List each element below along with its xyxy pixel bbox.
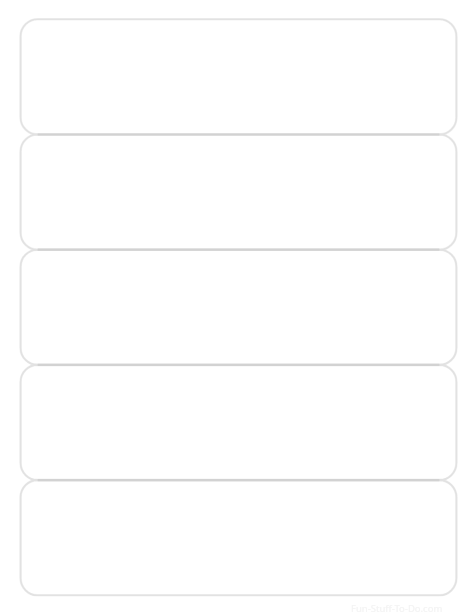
button[interactable]: Writing box 1: [21, 19, 457, 134]
button[interactable]: Writing box 5: [21, 480, 457, 595]
button[interactable]: Writing box 3: [21, 250, 457, 365]
button[interactable]: Writing box 4: [21, 365, 457, 480]
button[interactable]: Writing box 2: [21, 135, 457, 250]
staticText: Fun-Stuff-To-Do.com: [351, 602, 443, 614]
